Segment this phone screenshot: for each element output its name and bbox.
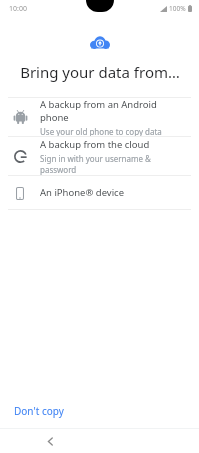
button[interactable]: Don't copy	[0, 396, 78, 428]
staticText: An iPhone® device	[40, 186, 125, 199]
staticText: 100%	[169, 4, 186, 13]
staticText: 10:00	[9, 4, 27, 14]
button[interactable]: Back	[39, 430, 61, 452]
staticText: Sign in with your username & password	[40, 153, 187, 175]
staticText: A backup from the cloud	[40, 138, 150, 151]
button[interactable]: A backup from an Android phone	[0, 98, 199, 136]
staticText: A backup from an Android phone	[40, 98, 187, 124]
staticText: Don't copy	[14, 404, 64, 418]
staticText: Bring your data from…	[20, 62, 180, 82]
staticText: Use your old phone to copy data wireless…	[40, 126, 187, 136]
button[interactable]: A backup from the cloud	[0, 137, 199, 175]
button[interactable]: An iPhone® device	[0, 176, 199, 209]
